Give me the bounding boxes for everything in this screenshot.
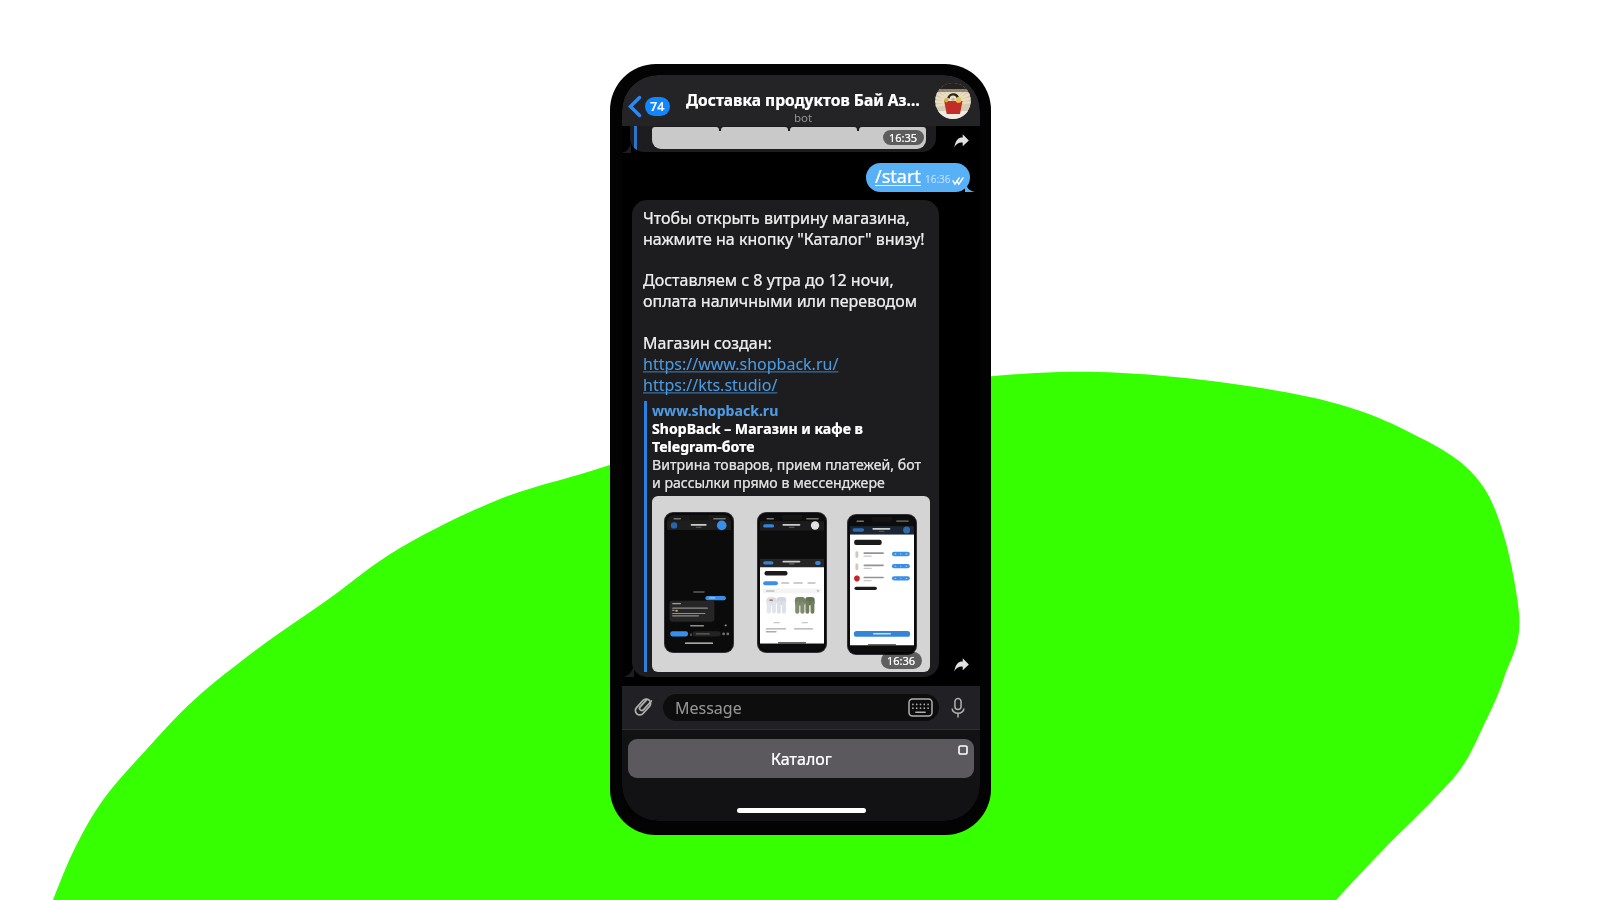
staticText: Магазин создан: [643,332,772,354]
button[interactable]: https://www.shopback.ru/ [643,353,839,375]
staticText: Message [675,697,742,719]
button[interactable]: Чтобы открыть витрину магазина, нажмите … [632,200,939,677]
button[interactable]: Record voice message [948,696,968,720]
staticText: Витрина товаров, прием платежей, бот и р… [652,455,921,492]
staticText: 74 [650,98,665,115]
staticText: www.shopback.ru [652,401,779,420]
staticText: ShopBack – Магазин и кафе в Telegram-бот… [652,419,863,456]
button[interactable]: Message [663,694,939,721]
staticText: 16:36 [887,653,916,668]
staticText: Каталог [771,748,832,770]
staticText: https://www.shopback.ru/ [643,353,839,375]
staticText: Чтобы открыть витрину магазина, нажмите … [643,207,925,250]
staticText: Доставляем с 8 утра до 12 ночи, оплата н… [643,269,918,312]
button[interactable]: ShopBack preview image [652,496,930,672]
button[interactable]: Attach file [632,696,654,718]
staticText: /start [875,164,921,189]
button[interactable]: https://kts.studio/ [643,374,778,396]
staticText: bot [794,110,813,126]
button[interactable]: /start [866,163,970,192]
button[interactable]: Каталог [628,739,974,778]
staticText: Доставка продуктов Бай Аз… [686,89,920,110]
button[interactable]: Chat avatar [935,83,971,119]
staticText: 16:35 [889,130,918,145]
button[interactable]: www.shopback.ru [652,401,779,420]
staticText: 16:36 [925,172,951,186]
button[interactable]: Back [627,90,672,123]
button[interactable]: Forward [954,134,969,148]
button[interactable]: Forward [954,658,969,672]
staticText: https://kts.studio/ [643,374,778,396]
